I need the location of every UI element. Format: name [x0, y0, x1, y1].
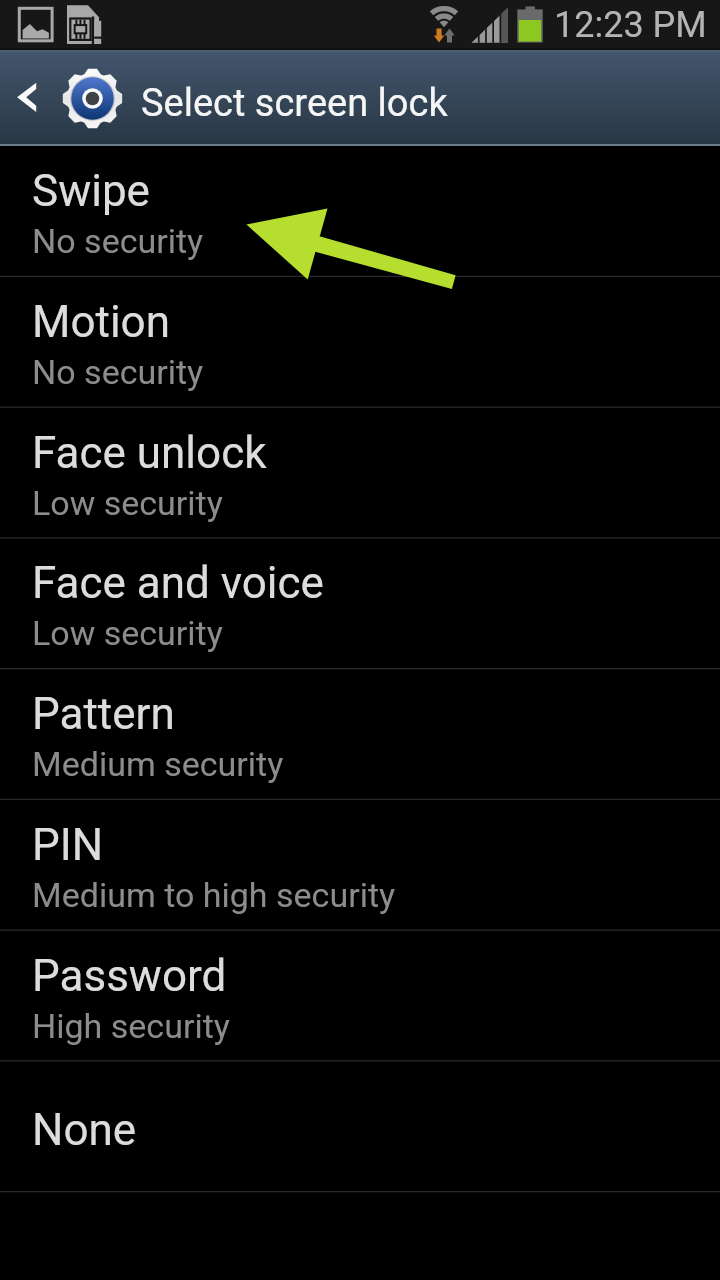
- button[interactable]: Swipe: [0, 146, 720, 277]
- staticText: None: [32, 1104, 137, 1156]
- staticText: PIN: [32, 819, 104, 871]
- button[interactable]: PIN: [0, 800, 720, 931]
- staticText: Motion: [32, 296, 170, 348]
- staticText: Select screen lock: [141, 81, 448, 126]
- staticText: High security: [32, 1006, 230, 1046]
- staticText: 12:23 PM: [554, 4, 707, 46]
- staticText: Medium security: [32, 744, 284, 784]
- staticText: No security: [32, 221, 204, 261]
- staticText: Pattern: [32, 688, 175, 740]
- button[interactable]: Password: [0, 931, 720, 1061]
- staticText: Low security: [32, 483, 223, 523]
- button[interactable]: Face unlock: [0, 408, 720, 538]
- staticText: Medium to high security: [32, 875, 396, 915]
- staticText: Low security: [32, 613, 223, 653]
- button[interactable]: None: [0, 1061, 720, 1192]
- button[interactable]: Pattern: [0, 669, 720, 800]
- staticText: Password: [32, 950, 227, 1002]
- staticText: No security: [32, 352, 204, 392]
- button[interactable]: Navigate up, Settings: [0, 50, 128, 146]
- staticText: Face unlock: [32, 427, 267, 479]
- staticText: Face and voice: [32, 557, 324, 609]
- button[interactable]: Face and voice: [0, 538, 720, 669]
- staticText: Swipe: [32, 165, 150, 217]
- button[interactable]: Motion: [0, 277, 720, 408]
